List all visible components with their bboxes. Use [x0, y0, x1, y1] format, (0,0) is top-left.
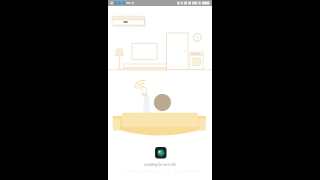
staticText: Leading Smart Life — [144, 161, 176, 167]
button[interactable]: Leading Smart Life — [108, 0, 212, 180]
